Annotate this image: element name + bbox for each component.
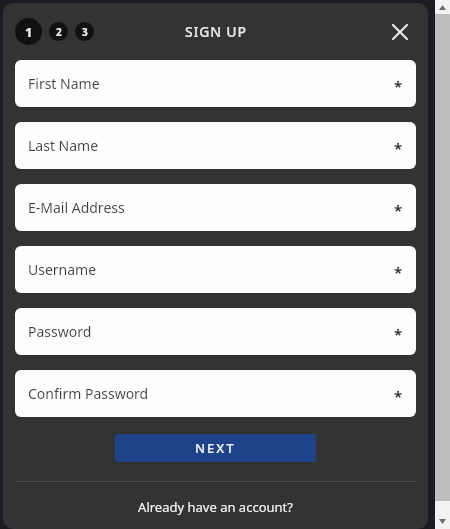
staticText: E-Mail Address [28,198,125,217]
staticText: Already have an account? [138,498,293,516]
staticText: Username [28,260,97,279]
button[interactable]: E-Mail Address [15,184,416,231]
button[interactable]: Last Name [15,122,416,169]
button[interactable]: Scroll up [435,0,450,14]
button[interactable]: Confirm Password [15,370,416,417]
staticText: * [394,386,403,406]
staticText: 2 [56,25,62,39]
button[interactable]: 1 [15,18,42,45]
button[interactable]: Password [15,308,416,355]
button[interactable]: First Name [15,60,416,107]
staticText: Last Name [28,136,99,155]
button[interactable]: Scroll down [435,513,450,529]
button[interactable]: 3 [75,22,94,41]
staticText: * [394,200,403,220]
staticText: * [394,76,403,96]
staticText: * [394,324,403,344]
staticText: 3 [82,25,88,39]
button[interactable]: Username [15,246,416,293]
staticText: Confirm Password [28,384,149,403]
staticText: First Name [28,74,100,93]
staticText: Password [28,322,92,341]
button[interactable]: Close [385,17,415,47]
staticText: 1 [25,23,33,41]
button[interactable]: Already have an account? [3,498,428,516]
staticText: * [394,138,403,158]
staticText: SIGN UP [185,22,247,41]
button[interactable]: NEXT [115,434,316,462]
staticText: NEXT [195,439,236,457]
button[interactable]: 2 [49,22,68,41]
staticText: * [394,262,403,282]
